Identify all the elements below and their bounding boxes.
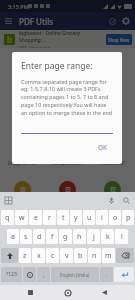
button[interactable]: z	[19, 248, 31, 263]
button[interactable]: b	[74, 248, 87, 263]
staticText: z	[23, 251, 27, 261]
button[interactable]: p	[122, 210, 134, 225]
button[interactable]: u	[83, 210, 95, 225]
staticText: a	[11, 232, 15, 242]
staticText: c	[51, 251, 55, 261]
staticText: y	[74, 213, 78, 223]
button[interactable]	[21, 125, 113, 134]
staticText: OK	[98, 143, 108, 152]
button[interactable]: r	[43, 210, 56, 225]
button[interactable]: Shop Now	[106, 34, 132, 45]
staticText: Compress PDF	[45, 160, 90, 166]
staticText: 3:15 PM	[8, 3, 29, 10]
button[interactable]: Text to PDF	[90, 140, 135, 167]
staticText: o	[113, 213, 118, 223]
staticText: Text to PDF	[90, 160, 135, 166]
staticText: l	[121, 232, 123, 242]
staticText: .	[106, 271, 108, 279]
staticText: g	[63, 232, 68, 242]
button[interactable]: Search	[122, 196, 131, 205]
button[interactable]: h	[73, 229, 86, 244]
staticText: Enter page range:	[21, 60, 93, 72]
button[interactable]: l	[115, 229, 128, 244]
button[interactable]: w	[15, 210, 28, 225]
staticText: u	[87, 213, 92, 223]
staticText: ?123	[6, 271, 17, 278]
staticText: r	[48, 213, 51, 223]
staticText: ,	[43, 271, 45, 279]
button[interactable]: y	[70, 210, 82, 225]
button[interactable]: Voice input	[107, 196, 116, 205]
staticText: s	[24, 232, 28, 242]
button[interactable]	[116, 248, 134, 263]
button[interactable]: Recent apps	[25, 287, 36, 298]
button[interactable]: ?123	[1, 267, 22, 282]
staticText: FREE · Shop in app	[19, 45, 50, 48]
staticText: j	[93, 232, 95, 242]
staticText: d	[37, 232, 42, 242]
button[interactable]: a	[7, 229, 19, 244]
button[interactable]: k	[101, 229, 114, 244]
staticText: v	[65, 251, 69, 261]
staticText: Comma separated page range for eg: 1-5,7…	[21, 78, 113, 117]
button[interactable]: Open navigation menu	[0, 14, 17, 29]
staticText: k	[106, 232, 110, 242]
button[interactable]: Compress PDF	[45, 140, 90, 167]
staticText: h	[77, 232, 82, 242]
button[interactable]: f	[46, 229, 58, 244]
staticText: English (India)	[60, 272, 90, 278]
button[interactable]: Merge PDF	[45, 180, 90, 207]
button[interactable]: c	[46, 248, 59, 263]
button[interactable]: q	[1, 210, 14, 225]
button[interactable]: g	[59, 229, 72, 244]
staticText: f	[51, 232, 54, 242]
button[interactable]: n	[88, 248, 101, 263]
staticText: q	[5, 213, 10, 223]
button[interactable]: ,	[37, 267, 50, 282]
button[interactable]	[1, 248, 18, 263]
staticText: Split PDF	[0, 200, 45, 206]
staticText: Image to PDF	[0, 160, 45, 166]
staticText: n	[92, 251, 97, 261]
button[interactable]: English (India)	[51, 267, 99, 282]
staticText: i	[101, 213, 103, 223]
staticText: Shop Now	[108, 37, 130, 43]
button[interactable]: v	[60, 248, 73, 263]
staticText: Rotate PDF	[90, 200, 135, 206]
button[interactable]: s	[20, 229, 32, 244]
button[interactable]: b	[0, 30, 135, 48]
button[interactable]: Home	[62, 287, 74, 299]
button[interactable]: o	[109, 210, 121, 225]
staticText: w	[19, 213, 25, 223]
staticText: PDF Utils	[19, 16, 54, 27]
button[interactable]: Select all	[105, 14, 120, 29]
button[interactable]: Image to PDF	[0, 140, 45, 167]
button[interactable]: OK	[93, 141, 113, 154]
button[interactable]	[114, 267, 134, 282]
staticText: p	[126, 213, 131, 223]
button[interactable]: j	[87, 229, 100, 244]
staticText: x	[37, 251, 41, 261]
button[interactable]: Settings	[120, 13, 135, 29]
button[interactable]: x	[32, 248, 45, 263]
button[interactable]: Clipboard	[4, 196, 13, 205]
staticText: b	[7, 34, 13, 45]
button[interactable]: d	[33, 229, 45, 244]
button[interactable]: t	[57, 210, 69, 225]
staticText: t	[62, 213, 65, 223]
staticText: bigbasket - Online Grocery Shopping ...	[19, 30, 106, 44]
button[interactable]: m	[102, 248, 115, 263]
button[interactable]: Rotate PDF	[90, 180, 135, 207]
button[interactable]: Back	[99, 287, 110, 298]
button[interactable]: e	[29, 210, 42, 225]
button[interactable]: i	[96, 210, 108, 225]
button[interactable]: Split PDF	[0, 180, 45, 207]
staticText: b	[78, 251, 83, 261]
staticText: e	[34, 213, 38, 223]
button[interactable]	[23, 267, 36, 282]
staticText: m	[105, 251, 112, 261]
